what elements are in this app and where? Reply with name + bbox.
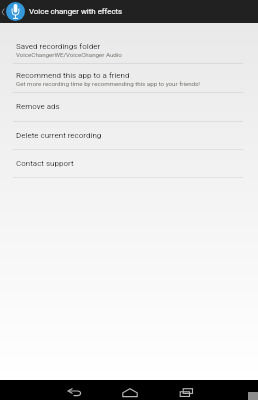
staticText: Get more recording time by recommending … — [16, 80, 200, 87]
staticText: Remove ads — [16, 102, 60, 111]
button[interactable]: Home — [102, 384, 158, 400]
button[interactable]: Contact support — [0, 150, 258, 178]
button[interactable]: Saved recordings folder — [0, 35, 258, 64]
staticText: Saved recordings folder — [16, 42, 101, 51]
button[interactable]: Back — [46, 384, 102, 400]
staticText: Delete current recording — [16, 131, 102, 140]
staticText: VoiceChangerWE/VoiceChanger Audio — [16, 51, 122, 58]
button[interactable]: Remove ads — [0, 93, 258, 122]
button[interactable]: Navigate up — [0, 0, 25, 23]
staticText: Recommend this app to a friend — [16, 71, 130, 80]
button[interactable]: Recommend this app to a friend — [0, 64, 258, 93]
button[interactable]: Delete current recording — [0, 122, 258, 150]
staticText: Contact support — [16, 159, 74, 168]
button[interactable]: Recent apps — [158, 384, 214, 400]
staticText: Voice changer with effects — [29, 7, 123, 16]
